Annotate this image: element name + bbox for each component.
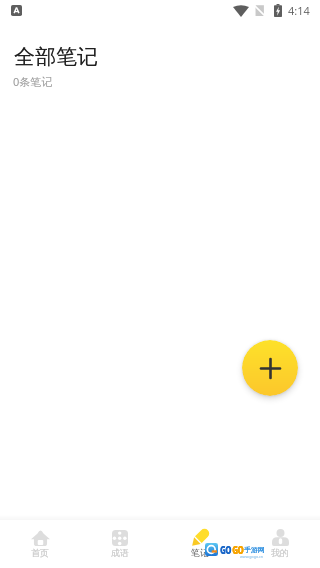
staticText: 我的: [271, 547, 289, 558]
staticText: GO: [220, 542, 231, 557]
staticText: GO: [232, 542, 244, 557]
staticText: GO: [220, 542, 231, 557]
button[interactable]: Add note: [242, 340, 298, 396]
staticText: 0条笔记: [13, 74, 53, 89]
staticText: 笔记: [191, 547, 209, 558]
staticText: 首页: [31, 547, 49, 558]
button[interactable]: 笔记: [160, 520, 240, 568]
button[interactable]: 我的: [240, 520, 320, 568]
staticText: 4:14: [288, 3, 310, 18]
staticText: 手游网: [244, 545, 265, 554]
staticText: www.gogo.cn: [240, 554, 263, 559]
staticText: 全部笔记: [14, 44, 98, 70]
staticText: GO: [232, 542, 244, 557]
button[interactable]: 首页: [0, 520, 80, 568]
staticText: 成语: [111, 547, 129, 558]
staticText: 全部笔记: [14, 44, 98, 70]
staticText: 手游网: [244, 545, 265, 554]
button[interactable]: 成语: [80, 520, 160, 568]
